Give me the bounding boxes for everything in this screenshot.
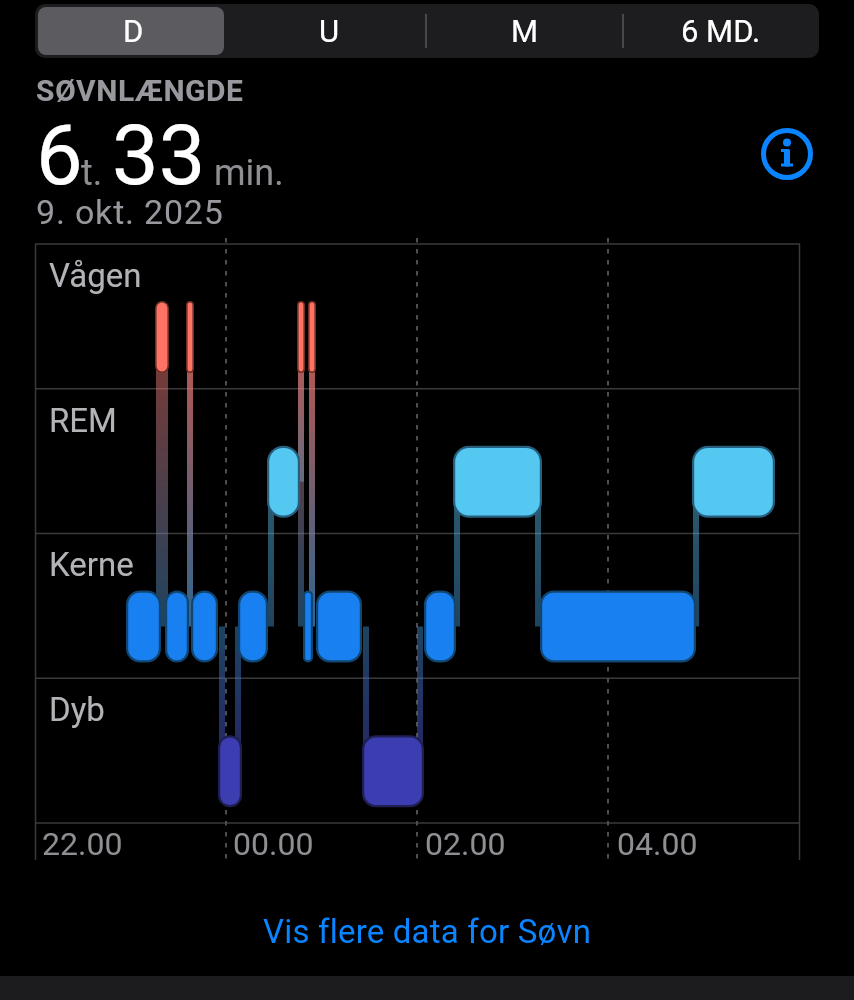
staticText: 33 [112,107,206,204]
staticText: 6 [36,107,83,204]
button[interactable]: D [35,4,231,58]
staticText: REM [49,401,117,440]
staticText: Dyb [49,690,105,729]
staticText: 02.00 [425,825,506,863]
staticText: 00.00 [233,825,314,863]
staticText: Kerne [49,545,134,584]
staticText: Vågen [49,256,142,295]
staticText: t. [81,152,103,194]
button[interactable]: 6 MD. [623,4,819,58]
staticText: Vis flere data for Søvn [263,912,592,951]
staticText: U [319,13,340,49]
button[interactable] [38,7,224,55]
button[interactable] [760,127,814,181]
staticText: SØVNLÆNGDE [36,73,244,108]
button[interactable]: M [427,4,623,58]
staticText: 04.00 [617,825,698,863]
button[interactable]: Vis flere data for Søvn [0,905,854,957]
staticText: 6 MD. [681,13,761,49]
button[interactable]: U [231,4,427,58]
staticText: M [511,13,539,49]
staticText: D [123,13,144,49]
staticText: 22.00 [42,825,123,863]
staticText: 9. okt. 2025 [36,192,224,232]
staticText: min. [214,152,284,194]
